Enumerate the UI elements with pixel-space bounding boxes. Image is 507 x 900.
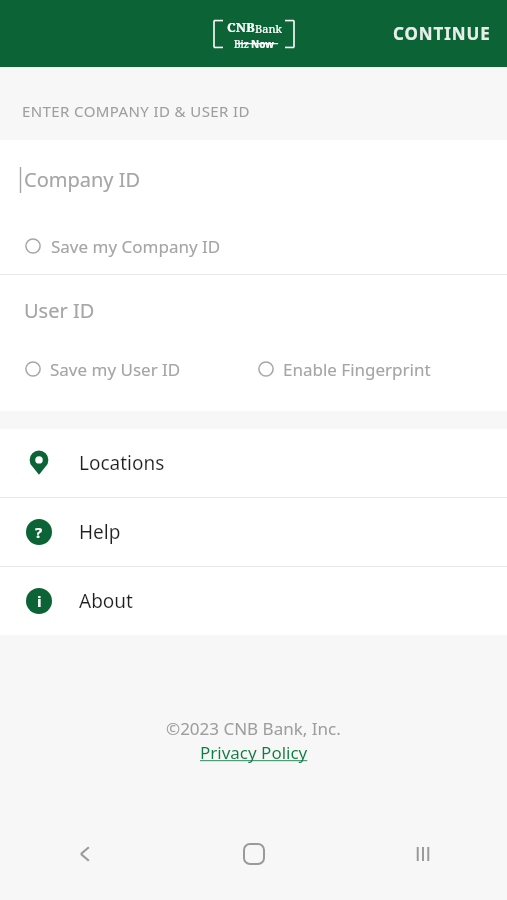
staticText: Save my Company ID	[51, 235, 221, 258]
button[interactable]: Company ID	[0, 140, 507, 218]
staticText: Now	[251, 37, 274, 51]
button[interactable]: User ID	[0, 275, 507, 345]
staticText: Company ID	[24, 166, 141, 193]
button[interactable]: Home	[169, 823, 338, 885]
button[interactable]: Enable Fingerprint	[253, 345, 507, 393]
button[interactable]: CONTINUE	[377, 12, 507, 55]
staticText: ?	[35, 522, 43, 542]
button[interactable]: ?	[0, 498, 507, 566]
staticText: ©2023 CNB Bank, Inc.	[166, 717, 341, 740]
button[interactable]: Privacy Policy	[200, 741, 308, 764]
staticText: Save my User ID	[50, 358, 181, 381]
staticText: Help	[79, 519, 121, 545]
staticText: Privacy Policy	[200, 741, 308, 764]
staticText: i	[37, 591, 42, 611]
staticText: About	[79, 588, 133, 614]
button[interactable]: Locations	[0, 429, 507, 497]
staticText: Bank	[255, 21, 282, 36]
staticText: User ID	[24, 297, 95, 324]
staticText: ENTER COMPANY ID & USER ID	[22, 101, 250, 121]
staticText: CONTINUE	[393, 22, 491, 45]
staticText: Locations	[79, 450, 165, 476]
staticText: Biz	[234, 37, 249, 51]
staticText: CNB	[227, 18, 255, 36]
button[interactable]: Recent apps	[338, 823, 507, 885]
button[interactable]: Save my User ID	[0, 345, 253, 393]
button[interactable]: Save my Company ID	[0, 218, 507, 274]
staticText: Enable Fingerprint	[283, 358, 431, 381]
button[interactable]: i	[0, 567, 507, 635]
button[interactable]: Back	[0, 823, 169, 885]
